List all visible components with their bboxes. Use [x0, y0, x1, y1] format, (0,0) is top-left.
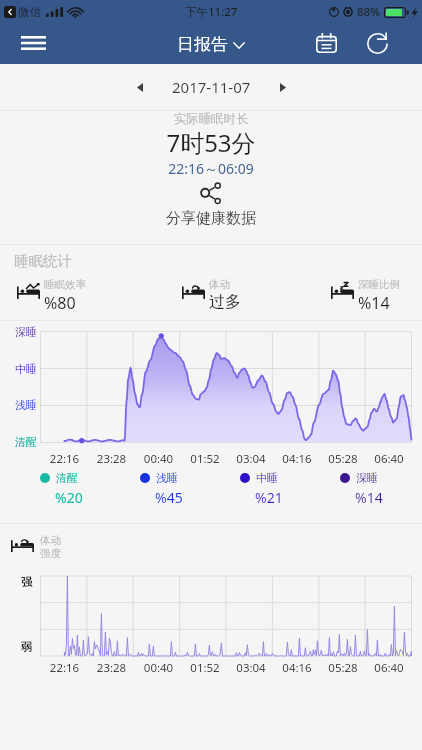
button[interactable]: Open navigation menu [8, 24, 58, 64]
staticText: 23:28 [88, 660, 135, 676]
staticText: %14 [358, 292, 390, 314]
staticText: 浅睡 [15, 398, 37, 412]
button[interactable]: 深睡 [340, 471, 378, 490]
button[interactable]: Next day [267, 71, 299, 103]
staticText: 微信 [18, 5, 41, 19]
staticText: 深睡 [356, 471, 378, 485]
staticText: 实际睡眠时长 [0, 111, 422, 127]
staticText: 睡眠效率 [44, 278, 86, 291]
staticText: %21 [255, 488, 283, 507]
staticText: 体动 [40, 534, 61, 547]
button[interactable]: 日报告 [171, 29, 251, 60]
staticText: 浅睡 [156, 471, 178, 485]
button[interactable]: 中睡 [240, 471, 278, 490]
staticText: 2017-11-07 [172, 77, 251, 97]
button[interactable]: Previous day [124, 71, 156, 103]
staticText: 01:52 [182, 451, 228, 467]
staticText: 05:28 [320, 660, 366, 676]
staticText: 中睡 [256, 471, 278, 485]
staticText: 00:40 [135, 660, 182, 676]
staticText: 清醒 [56, 471, 78, 485]
staticText: 下午11:27 [185, 4, 238, 20]
staticText: 22:16 [41, 660, 88, 676]
staticText: 强度 [40, 547, 61, 560]
staticText: 23:28 [88, 451, 135, 467]
staticText: 88% [357, 4, 380, 20]
staticText: 深睡比例 [358, 278, 400, 291]
staticText: 分享健康数据 [166, 209, 256, 228]
staticText: 00:40 [135, 451, 182, 467]
staticText: 05:28 [320, 451, 366, 467]
staticText: %80 [44, 292, 76, 314]
staticText: 睡眠统计 [14, 252, 72, 270]
staticText: 03:04 [228, 660, 274, 676]
staticText: 22:16～06:09 [0, 159, 422, 178]
button[interactable]: Refresh [356, 24, 402, 64]
staticText: 7时53分 [0, 126, 422, 159]
staticText: 中睡 [15, 362, 37, 376]
staticText: 体动 [209, 278, 230, 291]
staticText: %45 [155, 488, 183, 507]
button[interactable]: 分享健康数据 [0, 183, 422, 228]
staticText: 06:40 [366, 451, 412, 467]
button[interactable]: Calendar [303, 24, 349, 64]
staticText: 弱 [21, 640, 32, 654]
staticText: 04:16 [274, 451, 320, 467]
staticText: %14 [355, 488, 383, 507]
staticText: %20 [55, 488, 83, 507]
staticText: 日报告 [177, 34, 228, 55]
button[interactable]: 浅睡 [140, 471, 178, 490]
staticText: 06:40 [366, 660, 412, 676]
staticText: 03:04 [228, 451, 274, 467]
staticText: 01:52 [182, 660, 228, 676]
button[interactable]: 清醒 [40, 471, 78, 490]
staticText: 04:16 [274, 660, 320, 676]
staticText: 强 [21, 575, 32, 589]
staticText: 清醒 [15, 435, 37, 449]
staticText: 22:16 [41, 451, 88, 467]
staticText: 深睡 [15, 325, 37, 339]
staticText: 过多 [209, 292, 241, 312]
